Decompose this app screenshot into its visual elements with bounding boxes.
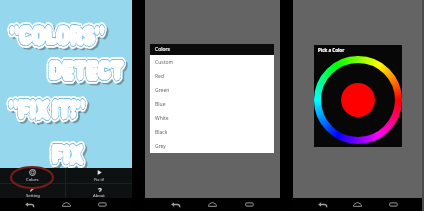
button[interactable]: Setting [0, 184, 65, 198]
staticText: FIX [51, 140, 83, 171]
button[interactable]: Blue [150, 97, 274, 111]
staticText: Blue [155, 101, 166, 108]
button[interactable]: Recents [243, 198, 256, 211]
staticText: Green [155, 87, 170, 94]
staticText: DETECT [48, 56, 123, 87]
staticText: FIX [51, 140, 83, 171]
staticText: Pick a Color [318, 47, 345, 53]
staticText: "COLORS" [9, 21, 104, 52]
button[interactable]: Custom [150, 55, 274, 69]
staticText: "FIX IT!" [8, 95, 84, 126]
staticText: "FIX IT!" [8, 95, 84, 126]
button[interactable]: Home [206, 198, 219, 211]
staticText: "COLORS" [9, 21, 104, 52]
staticText: DETECT [50, 58, 125, 89]
staticText: Red [155, 73, 165, 80]
button[interactable]: Back [316, 198, 329, 211]
staticText: Black [155, 129, 168, 136]
staticText: ? [98, 185, 102, 192]
staticText: Colors [26, 177, 39, 183]
staticText: "FIX IT!" [8, 95, 84, 126]
staticText: Colors [155, 46, 170, 53]
button[interactable]: Black [150, 125, 274, 139]
staticText: DETECT [48, 56, 123, 87]
staticText: FIX [51, 140, 83, 171]
button[interactable]: Home [351, 198, 364, 211]
button[interactable]: ? [66, 184, 132, 198]
button[interactable]: Back [169, 198, 182, 211]
staticText: FIX [53, 142, 85, 173]
staticText: Grey [155, 143, 166, 150]
button[interactable]: Pick a color [314, 54, 402, 146]
staticText: About [93, 193, 105, 198]
button[interactable]: Fix it! [66, 168, 132, 183]
button[interactable]: Recents [387, 198, 400, 211]
staticText: "COLORS" [9, 21, 104, 52]
staticText: Setting [26, 193, 40, 198]
staticText: Custom [155, 59, 174, 66]
button[interactable]: Home [60, 198, 73, 211]
button[interactable]: Green [150, 83, 274, 97]
staticText: "COLORS" [11, 23, 106, 54]
staticText: White [155, 115, 169, 122]
button[interactable]: Colors [0, 168, 65, 183]
staticText: "FIX IT!" [10, 97, 86, 128]
button[interactable]: Grey [150, 139, 274, 153]
button[interactable]: White [150, 111, 274, 125]
staticText: DETECT [48, 56, 123, 87]
button[interactable]: Red [150, 69, 274, 83]
button[interactable]: Recents [96, 198, 109, 211]
button[interactable]: Back [23, 198, 36, 211]
staticText: Fix it! [94, 177, 105, 183]
